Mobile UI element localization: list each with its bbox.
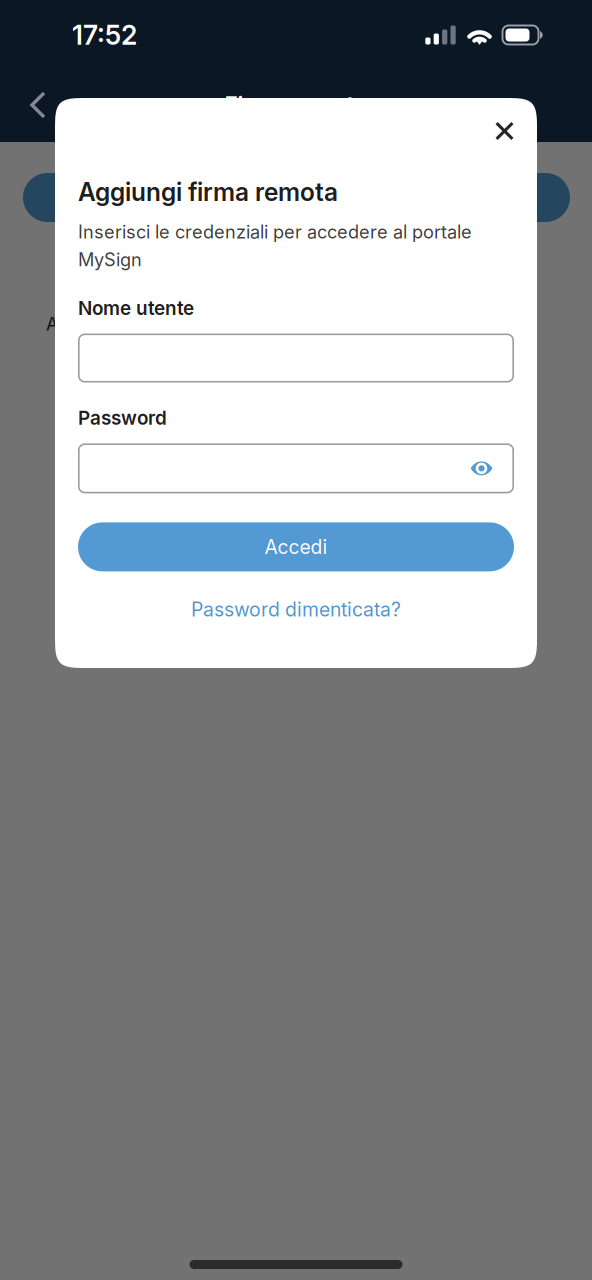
staticText: Nome utente	[78, 297, 194, 319]
staticText: Aggiungi firma remota	[78, 177, 338, 207]
button[interactable]: Mostra password	[78, 443, 514, 493]
staticText: Appongi la tua firma elettronica qualifi…	[46, 313, 522, 335]
staticText: Inserisci le credenziali per accedere al…	[78, 221, 472, 271]
staticText: Accedi	[264, 535, 327, 559]
staticText: Password	[78, 407, 167, 429]
button[interactable]: Chiudi	[480, 114, 514, 148]
staticText: Password dimenticata?	[191, 598, 401, 621]
staticText: 17:52	[72, 19, 137, 51]
button[interactable]: Indietro	[16, 83, 60, 127]
button[interactable]: Accedi	[78, 522, 514, 571]
staticText: Firma remota	[224, 91, 367, 119]
button[interactable]: Password dimenticata?	[78, 595, 514, 623]
